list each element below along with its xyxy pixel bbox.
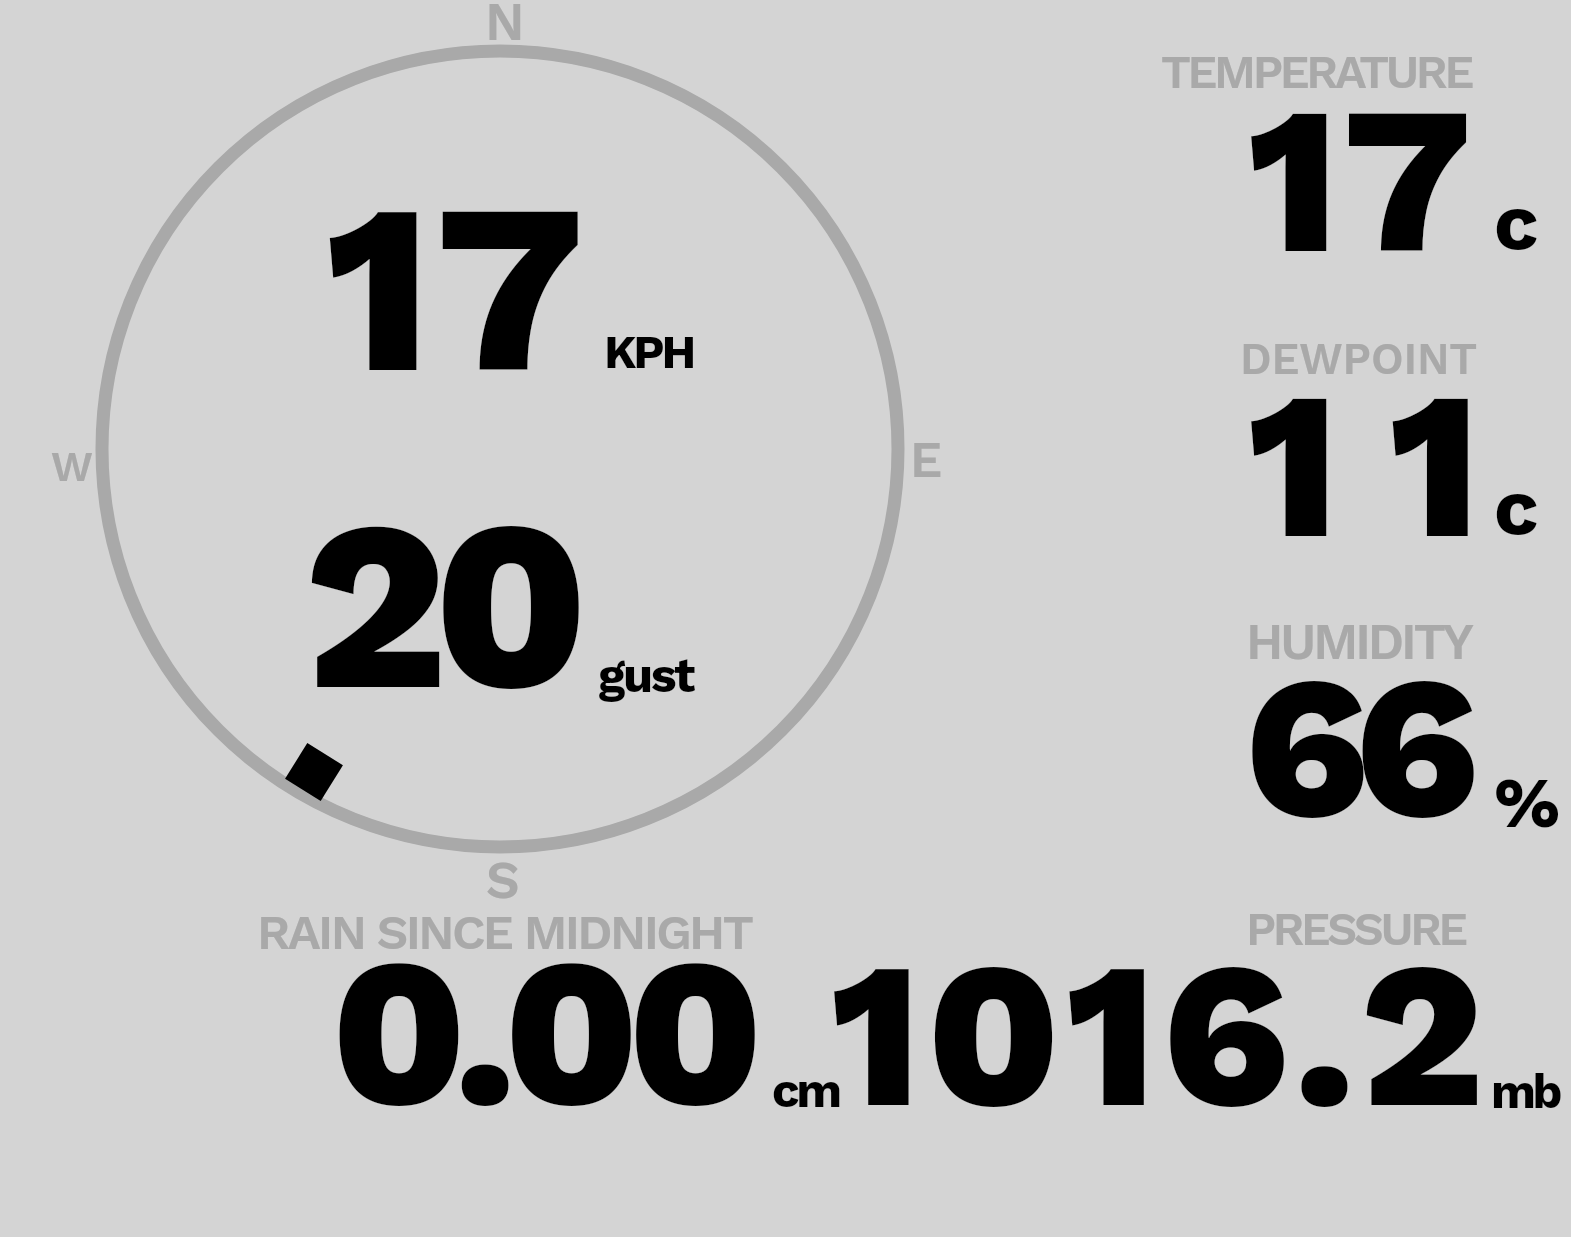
staticText: 66 bbox=[1244, 629, 1465, 865]
staticText: c bbox=[1494, 461, 1539, 553]
staticText: PRESSURE bbox=[1246, 902, 1465, 957]
staticText: KPH bbox=[604, 324, 694, 379]
staticText: S bbox=[486, 849, 520, 910]
button[interactable]: Temperature 17 degrees C bbox=[1100, 20, 1571, 300]
button[interactable]: Wind speed 17 KPH, gust 20 bbox=[36, 0, 964, 910]
staticText: gust bbox=[598, 647, 694, 704]
staticText: N bbox=[485, 0, 525, 53]
staticText: 17 bbox=[325, 147, 590, 428]
staticText: % bbox=[1494, 761, 1561, 844]
staticText: W bbox=[51, 441, 93, 491]
staticText: E bbox=[910, 430, 943, 490]
button[interactable]: Pressure 1016.2 mb bbox=[870, 890, 1571, 1130]
staticText: 17 bbox=[1247, 58, 1476, 302]
staticText: 0.00 bbox=[331, 910, 752, 1155]
button[interactable]: Dewpoint 11 degrees C bbox=[1100, 305, 1571, 585]
other: Wind direction south-south-west bbox=[285, 743, 343, 801]
staticText: 20 bbox=[304, 466, 575, 745]
staticText: mb bbox=[1491, 1064, 1560, 1120]
staticText: DEWPOINT bbox=[1240, 333, 1478, 385]
staticText: 11 bbox=[1247, 343, 1531, 587]
staticText: RAIN SINCE MIDNIGHT bbox=[257, 903, 752, 961]
button[interactable]: Humidity 66 percent bbox=[1100, 590, 1571, 870]
staticText: c bbox=[1494, 176, 1539, 268]
staticText: 1016.2 bbox=[830, 914, 1489, 1156]
staticText: cm bbox=[772, 1062, 839, 1119]
staticText: HUMIDITY bbox=[1246, 612, 1471, 671]
button[interactable]: Rain since midnight 0.00 cm bbox=[240, 890, 860, 1130]
staticText: TEMPERATURE bbox=[1161, 44, 1472, 99]
